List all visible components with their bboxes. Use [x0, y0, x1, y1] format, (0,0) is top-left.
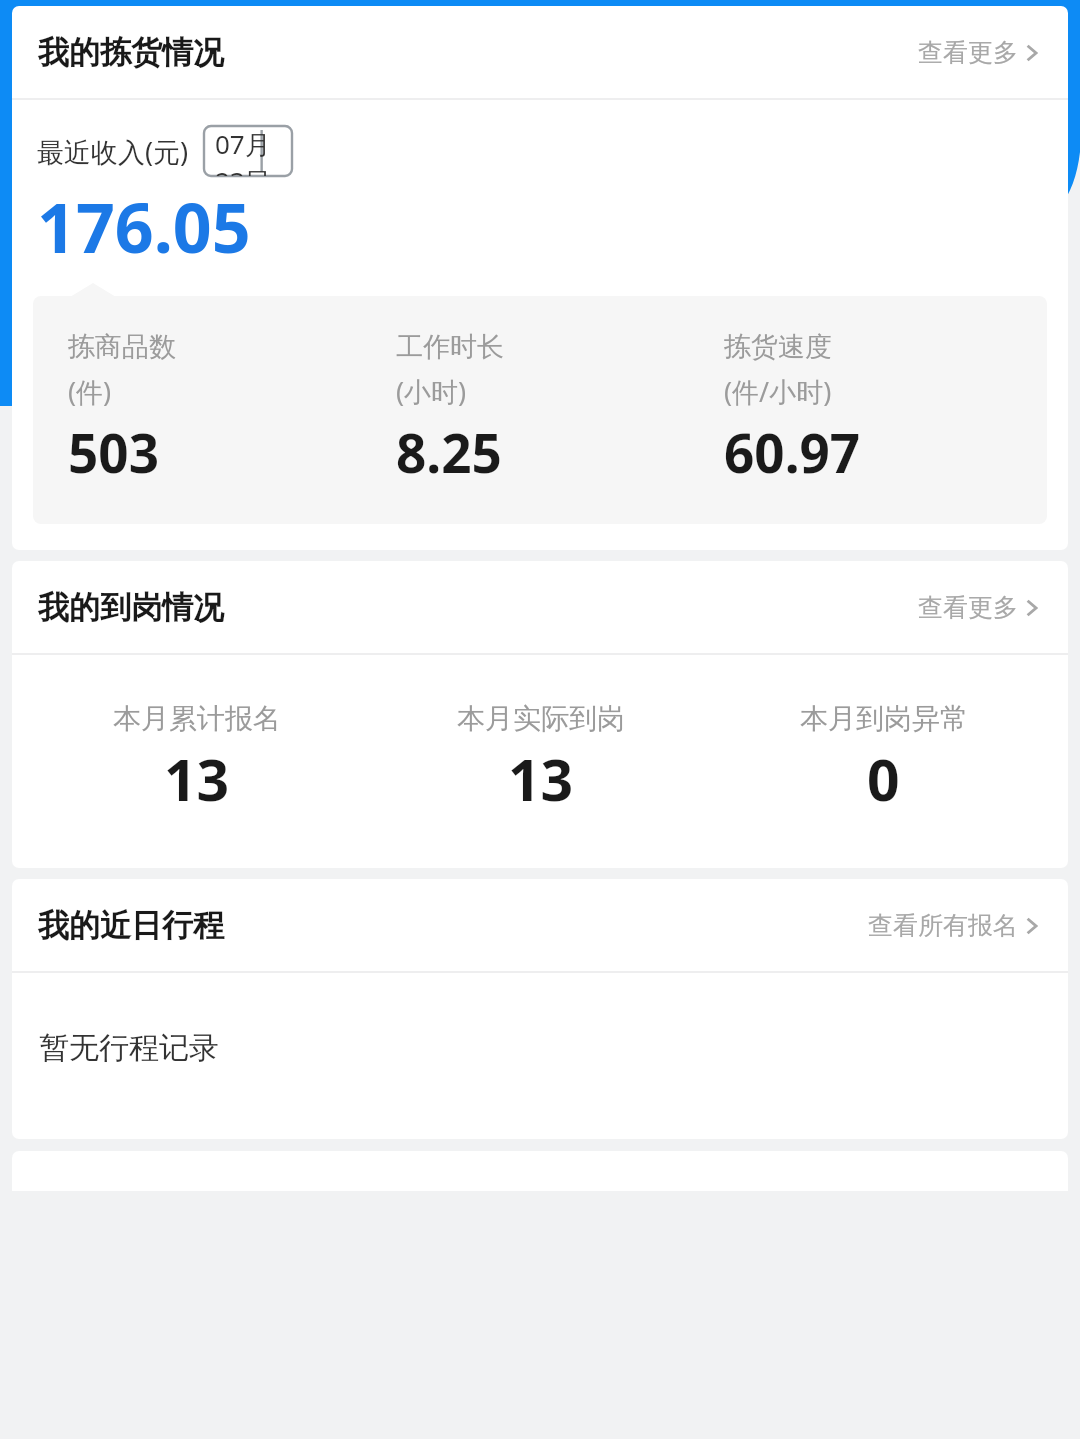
- staticText: 暂无行程记录: [39, 1029, 219, 1067]
- staticText: 查看所有报名: [868, 910, 1018, 941]
- staticText: 我的到岗情况: [38, 588, 224, 627]
- staticText: 拣商品数: [68, 330, 176, 364]
- staticText: 本月累计报名: [113, 701, 281, 736]
- button[interactable]: 我的到岗情况: [12, 561, 1068, 868]
- button[interactable]: 查看所有报名: [864, 906, 1042, 945]
- staticText: 我的近日行程: [38, 906, 224, 945]
- button[interactable]: 我的拣货情况: [12, 6, 1068, 550]
- staticText: 176.05: [37, 180, 251, 273]
- button[interactable]: Select date: [204, 126, 292, 176]
- staticText: 最近收入(元): [37, 133, 189, 170]
- staticText: 60.97: [724, 416, 861, 488]
- staticText: (件): [68, 373, 112, 410]
- staticText: 503: [68, 416, 159, 488]
- staticText: 本月实际到岗: [457, 701, 625, 736]
- button[interactable]: 查看更多: [914, 588, 1042, 627]
- staticText: 工作时长: [396, 330, 504, 364]
- staticText: 本月到岗异常: [800, 701, 968, 736]
- staticText: (件/小时): [724, 373, 832, 410]
- staticText: 拣货速度: [724, 330, 832, 364]
- staticText: 0: [867, 740, 900, 818]
- staticText: 13: [508, 740, 574, 818]
- button[interactable]: 查看更多: [914, 33, 1042, 72]
- staticText: 查看更多: [918, 37, 1018, 68]
- staticText: 07月23日: [215, 126, 281, 176]
- staticText: 13: [164, 740, 230, 818]
- staticText: (小时): [396, 373, 467, 410]
- button[interactable]: 我的近日行程: [12, 879, 1068, 1139]
- staticText: 查看更多: [918, 592, 1018, 623]
- staticText: 8.25: [396, 416, 502, 488]
- staticText: 我的拣货情况: [38, 33, 224, 72]
